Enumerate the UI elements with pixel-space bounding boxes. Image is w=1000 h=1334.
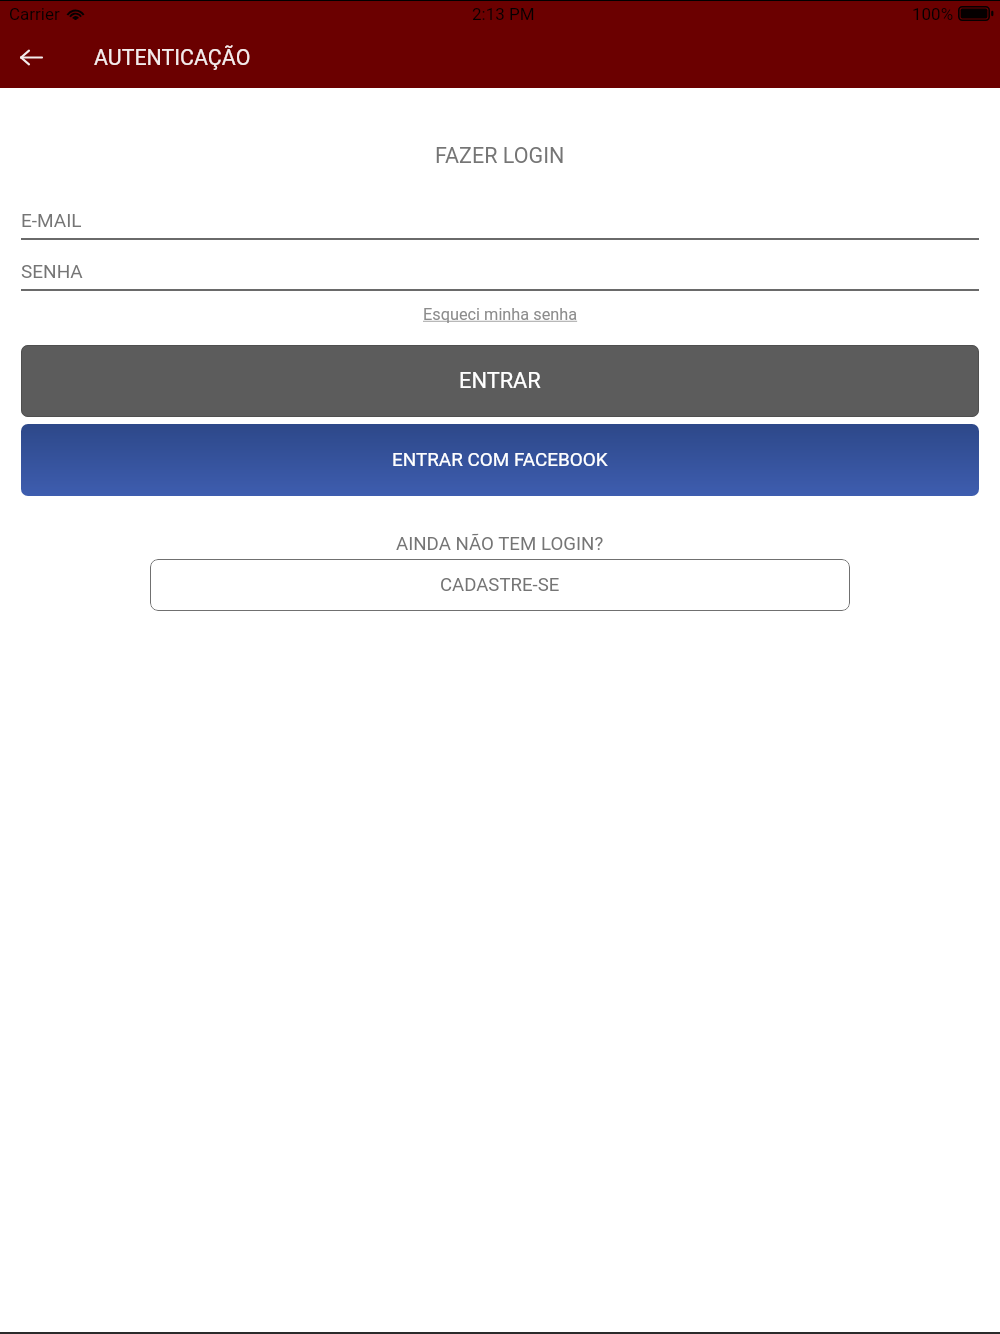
button[interactable]: ENTRAR COM FACEBOOK (21, 424, 979, 496)
staticText: E-MAIL (21, 209, 82, 231)
button[interactable]: CADASTRE-SE (150, 559, 850, 611)
staticText: CADASTRE-SE (440, 574, 560, 596)
button[interactable]: ENTRAR (21, 345, 979, 417)
button[interactable]: SENHA (0, 254, 1000, 291)
staticText: ENTRAR COM FACEBOOK (392, 448, 608, 470)
staticText: 2:13 PM (472, 4, 535, 24)
button[interactable]: E-MAIL (0, 203, 1000, 240)
other: Wi-Fi signal (66, 6, 85, 20)
staticText: ENTRAR (459, 368, 541, 394)
staticText: AINDA NÃO TEM LOGIN? (396, 533, 604, 555)
button[interactable]: Back (9, 33, 57, 81)
staticText: FAZER LOGIN (435, 143, 565, 168)
staticText: SENHA (21, 260, 83, 282)
staticText: AUTENTICAÇÃO (94, 45, 251, 70)
button[interactable]: Esqueci minha senha (423, 305, 578, 324)
staticText: Esqueci minha senha (423, 305, 578, 324)
staticText: 100% (912, 4, 954, 24)
staticText: Carrier (9, 4, 60, 24)
other: Battery full (958, 6, 998, 21)
